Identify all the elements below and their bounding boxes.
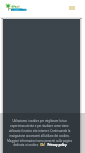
button[interactable]: Ok!: [40, 143, 45, 147]
button[interactable]: Privacy policy: [45, 143, 67, 147]
staticText: dedicata ai cookies.: [12, 143, 40, 147]
staticText: Utilizziamo i cookies per migliorare la …: [7, 119, 72, 143]
button[interactable]: Home: [4, 3, 29, 12]
